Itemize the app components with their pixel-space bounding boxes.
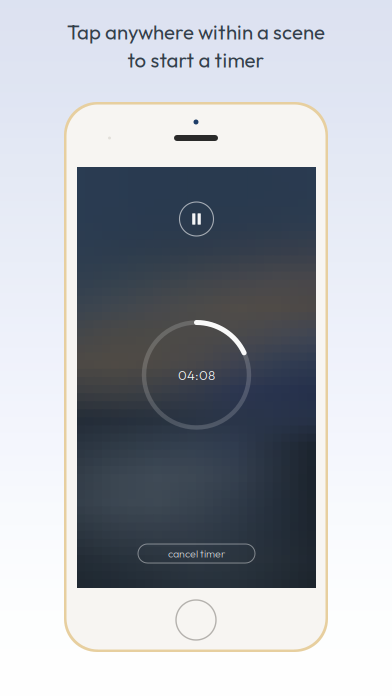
button[interactable]: Pause timer (174, 197, 218, 241)
button[interactable]: cancel timer (138, 544, 255, 563)
staticText: Tap anywhere within a scene (67, 19, 325, 45)
staticText: to start a timer (127, 47, 264, 73)
staticText: cancel timer (168, 547, 225, 560)
staticText: 04:08 (178, 367, 215, 383)
